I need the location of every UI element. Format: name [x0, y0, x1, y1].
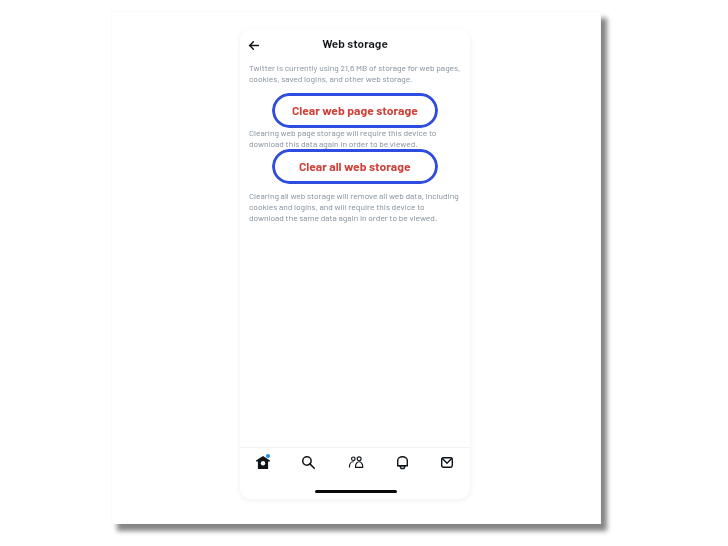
- staticText: Clear all web storage: [299, 159, 411, 174]
- button[interactable]: Home: [249, 448, 277, 476]
- button[interactable]: Clear web page storage: [272, 93, 438, 128]
- button[interactable]: Notifications: [388, 448, 416, 476]
- button[interactable]: Communities: [342, 448, 370, 476]
- staticText: Clearing web page storage will require t…: [249, 128, 461, 149]
- button[interactable]: Search: [294, 448, 322, 476]
- staticText: Twitter is currently using 21,6 MB of st…: [249, 63, 461, 84]
- staticText: Clear web page storage: [292, 103, 418, 118]
- staticText: Web storage: [240, 36, 470, 50]
- button[interactable]: Clear all web storage: [272, 149, 438, 184]
- button[interactable]: Messages: [433, 448, 461, 476]
- staticText: Clearing all web storage will remove all…: [249, 191, 461, 223]
- button[interactable]: Back: [243, 34, 265, 56]
